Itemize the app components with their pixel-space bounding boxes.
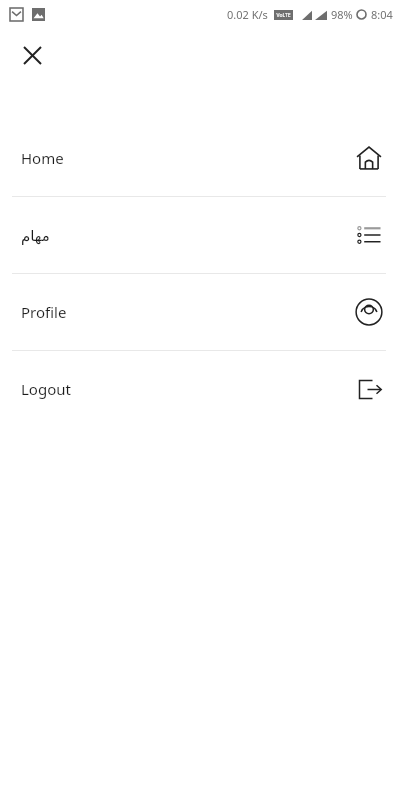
staticText: Logout	[21, 379, 71, 399]
button[interactable]: Close	[12, 35, 52, 75]
staticText: مهام	[21, 227, 50, 244]
button[interactable]: Logout	[0, 351, 400, 427]
staticText: Profile	[21, 302, 67, 322]
staticText: 0.02 K/s	[227, 7, 268, 22]
button[interactable]: Profile	[0, 274, 400, 350]
staticText: 8:04	[371, 7, 393, 22]
staticText: Home	[21, 148, 64, 168]
button[interactable]: Home	[0, 120, 400, 196]
button[interactable]: مهام	[0, 197, 400, 273]
staticText: VoLTE	[276, 12, 291, 19]
staticText: 98%	[331, 7, 353, 22]
